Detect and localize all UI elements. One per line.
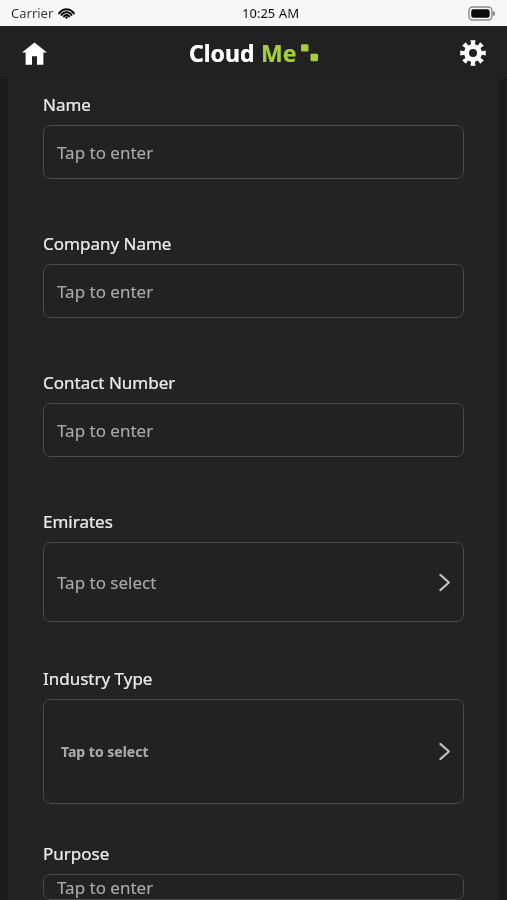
button[interactable]: Tap to enter [43, 874, 464, 900]
staticText: Tap to select [61, 742, 149, 761]
staticText: Tap to enter [57, 419, 154, 442]
staticText: Tap to enter [57, 280, 154, 303]
staticText: Industry Type [43, 667, 153, 690]
button[interactable]: Home [12, 31, 56, 75]
staticText: Tap to select [57, 571, 157, 594]
button[interactable]: Tap to select [43, 699, 464, 804]
staticText: Company Name [43, 232, 172, 255]
staticText: Cloud [189, 37, 255, 68]
staticText: Purpose [43, 842, 110, 865]
staticText: Name [43, 93, 91, 116]
button[interactable]: Tap to enter [43, 125, 464, 179]
button[interactable]: Tap to select [43, 542, 464, 622]
staticText: 10:25 AM [242, 4, 300, 22]
staticText: Emirates [43, 510, 113, 533]
button[interactable]: Settings [451, 31, 495, 75]
staticText: Tap to enter [57, 141, 154, 164]
staticText: Tap to enter [57, 876, 154, 899]
staticText: Me [261, 37, 297, 68]
button[interactable]: Tap to enter [43, 264, 464, 318]
staticText: Contact Number [43, 371, 176, 394]
button[interactable]: Tap to enter [43, 403, 464, 457]
staticText: Carrier [11, 4, 54, 22]
